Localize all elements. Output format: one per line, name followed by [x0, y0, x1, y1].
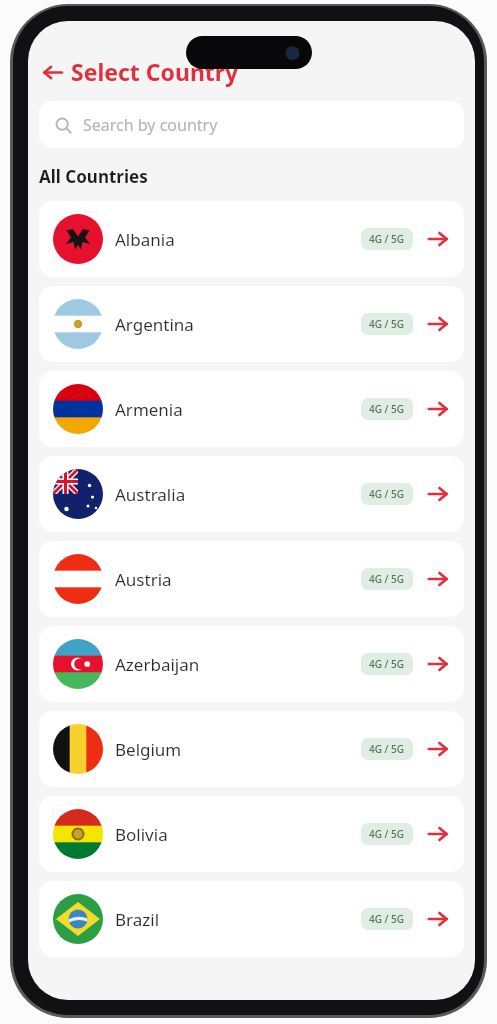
- button[interactable]: Back: [28, 54, 475, 89]
- other: Open Bolivia: [426, 822, 450, 846]
- other: Open Argentina: [426, 312, 450, 336]
- staticText: Armenia: [115, 398, 361, 421]
- staticText: 4G / 5G: [369, 657, 405, 671]
- other: Open Armenia: [426, 397, 450, 421]
- button[interactable]: Bolivia: [39, 796, 464, 872]
- button[interactable]: Azerbaijan: [39, 626, 464, 702]
- staticText: Select Country: [71, 56, 239, 87]
- staticText: Austria: [115, 568, 361, 591]
- button[interactable]: Australia: [39, 456, 464, 532]
- other: Open Australia: [426, 482, 450, 506]
- staticText: Bolivia: [115, 823, 361, 846]
- staticText: Albania: [115, 228, 361, 251]
- other: Open Azerbaijan: [426, 652, 450, 676]
- staticText: 4G / 5G: [369, 317, 405, 331]
- staticText: Azerbaijan: [115, 653, 361, 676]
- staticText: 4G / 5G: [369, 572, 405, 586]
- button[interactable]: Search by country: [39, 101, 464, 148]
- other: Open Austria: [426, 567, 450, 591]
- button[interactable]: Brazil: [39, 881, 464, 957]
- staticText: 4G / 5G: [369, 402, 405, 416]
- staticText: Brazil: [115, 908, 361, 931]
- staticText: Argentina: [115, 313, 361, 336]
- button[interactable]: Belgium: [39, 711, 464, 787]
- staticText: 4G / 5G: [369, 827, 405, 841]
- staticText: 4G / 5G: [369, 487, 405, 501]
- button[interactable]: Argentina: [39, 286, 464, 362]
- staticText: Belgium: [115, 738, 361, 761]
- staticText: All Countries: [39, 165, 148, 188]
- other: Open Albania: [426, 227, 450, 251]
- other: Open Belgium: [426, 737, 450, 761]
- staticText: Search by country: [83, 114, 218, 136]
- staticText: 4G / 5G: [369, 912, 405, 926]
- button[interactable]: Austria: [39, 541, 464, 617]
- staticText: 4G / 5G: [369, 232, 405, 246]
- other: Open Brazil: [426, 907, 450, 931]
- button[interactable]: Albania: [39, 201, 464, 277]
- staticText: 4G / 5G: [369, 742, 405, 756]
- other: Back: [39, 59, 65, 85]
- staticText: Australia: [115, 483, 361, 506]
- button[interactable]: Armenia: [39, 371, 464, 447]
